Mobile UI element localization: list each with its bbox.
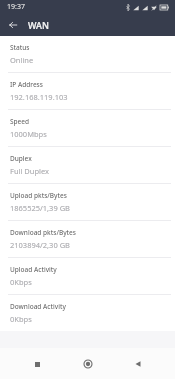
button[interactable]: Download Activity — [0, 295, 175, 331]
button[interactable]: Download pkts/Bytes — [0, 221, 175, 258]
button[interactable]: Status — [0, 36, 175, 73]
staticText: 1865525/1,39 GB — [10, 203, 70, 213]
staticText: Download pkts/Bytes — [10, 228, 76, 237]
staticText: Upload Activity — [10, 265, 57, 274]
button[interactable]: Duplex — [0, 147, 175, 184]
staticText: 1000Mbps — [10, 129, 47, 139]
staticText: Full Duplex — [10, 166, 50, 176]
button[interactable]: Back — [3, 15, 23, 35]
staticText: 0Kbps — [10, 277, 32, 287]
staticText: IP Address — [10, 80, 43, 89]
staticText: Online — [10, 55, 34, 65]
button[interactable]: Home — [75, 351, 101, 377]
button[interactable]: Speed — [0, 110, 175, 147]
button[interactable]: IP Address — [0, 73, 175, 110]
staticText: Speed — [10, 117, 30, 126]
staticText: WAN — [28, 19, 49, 31]
staticText: 0Kbps — [10, 314, 32, 324]
staticText: Duplex — [10, 154, 32, 163]
staticText: 2103894/2,30 GB — [10, 240, 70, 250]
staticText: Upload pkts/Bytes — [10, 191, 67, 200]
button[interactable]: Upload pkts/Bytes — [0, 184, 175, 221]
staticText: 192.168.119.103 — [10, 92, 68, 102]
staticText: 19:37 — [7, 2, 25, 12]
button[interactable]: Recent apps — [24, 351, 50, 377]
button[interactable]: Upload Activity — [0, 258, 175, 295]
staticText: Download Activity — [10, 302, 66, 311]
staticText: Status — [10, 43, 30, 52]
button[interactable]: Back — [125, 351, 151, 377]
